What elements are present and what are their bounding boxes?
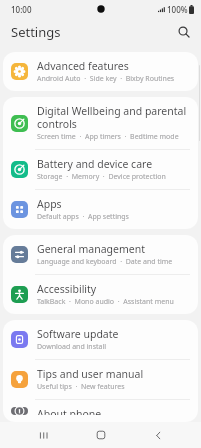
button[interactable]: Tips and user manual bbox=[3, 360, 198, 399]
staticText: About phone bbox=[37, 407, 102, 415]
staticText: TalkBack · Mono audio · Assistant menu bbox=[37, 297, 174, 307]
staticText: Useful tips · New features bbox=[37, 382, 125, 392]
staticText: General management bbox=[37, 242, 145, 256]
staticText: 10:00 bbox=[11, 4, 32, 15]
staticText: Software update bbox=[37, 327, 119, 341]
button[interactable]: Home bbox=[86, 422, 116, 448]
button[interactable]: Software update bbox=[3, 320, 198, 359]
staticText: Download and install bbox=[37, 342, 107, 352]
staticText: Settings bbox=[11, 23, 61, 41]
button[interactable]: Advanced features bbox=[3, 52, 198, 91]
button[interactable]: Digital Wellbeing and parental controls bbox=[3, 97, 198, 149]
button[interactable]: General management bbox=[3, 235, 198, 274]
staticText: Default apps · App settings bbox=[37, 212, 129, 222]
button[interactable]: About phone bbox=[3, 400, 198, 422]
staticText: Battery and device care bbox=[37, 157, 153, 171]
button[interactable]: Back bbox=[143, 422, 173, 448]
button[interactable]: Search bbox=[173, 21, 195, 43]
staticText: Advanced features bbox=[37, 59, 129, 73]
staticText: Accessibility bbox=[37, 282, 97, 296]
staticText: Language and keyboard · Date and time bbox=[37, 257, 173, 267]
button[interactable]: Battery and device care bbox=[3, 150, 198, 189]
staticText: Screen time · App timers · Bedtime mode bbox=[37, 132, 179, 142]
button[interactable]: Apps bbox=[3, 190, 198, 229]
staticText: Android Auto · Side key · Bixby Routines bbox=[37, 74, 175, 84]
staticText: Storage · Memory · Device protection bbox=[37, 172, 166, 182]
button[interactable]: Accessibility bbox=[3, 275, 198, 314]
staticText: Tips and user manual bbox=[37, 367, 144, 381]
staticText: Digital Wellbeing and parental controls bbox=[37, 104, 190, 131]
staticText: 100% bbox=[167, 4, 188, 15]
staticText: Apps bbox=[37, 197, 62, 211]
button[interactable]: Recent apps bbox=[28, 422, 58, 448]
